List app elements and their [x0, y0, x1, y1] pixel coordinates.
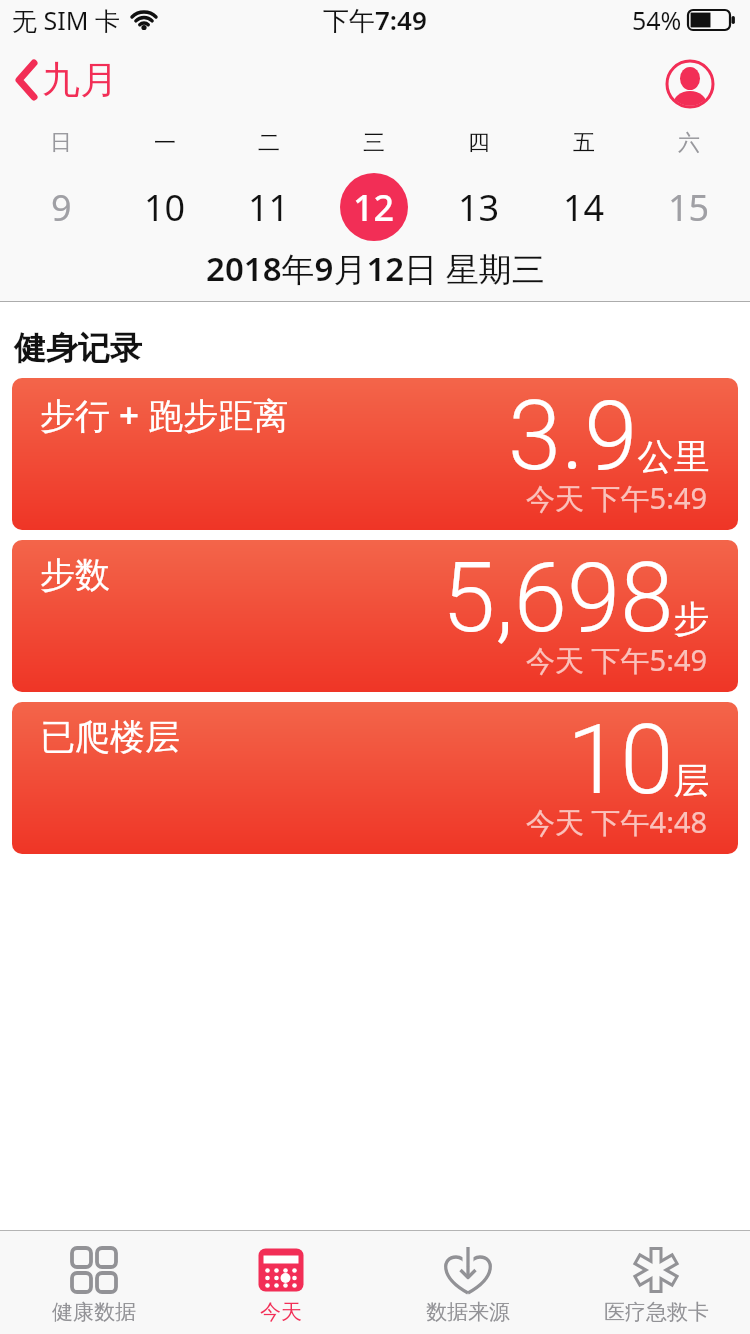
staticText: 四 — [468, 129, 490, 157]
button[interactable]: 九月 — [14, 56, 118, 104]
staticText: 五 — [573, 129, 595, 157]
button[interactable]: 12 — [340, 173, 408, 241]
staticText: 已爬楼层 — [40, 715, 180, 759]
staticText: 10层 — [567, 704, 710, 817]
button[interactable]: 10 — [131, 173, 199, 241]
staticText: 六 — [678, 129, 700, 157]
staticText: 无 SIM 卡 — [12, 3, 120, 37]
staticText: 2018年9月12日 星期三 — [206, 246, 545, 288]
button[interactable]: 数据来源 — [374, 1231, 562, 1334]
button[interactable]: 11 — [235, 173, 303, 241]
staticText: 3.9公里 — [508, 380, 710, 493]
staticText: 14 — [563, 183, 605, 232]
button[interactable]: 健康数据 — [0, 1231, 187, 1334]
staticText: 13 — [458, 183, 500, 232]
staticText: 步数 — [40, 553, 110, 597]
staticText: 下午7:49 — [323, 2, 427, 38]
staticText: 今天 下午4:48 — [526, 802, 708, 842]
staticText: 三 — [363, 129, 385, 157]
staticText: 11 — [248, 183, 290, 232]
button[interactable]: 13 — [445, 173, 513, 241]
button[interactable]: 今天 — [187, 1231, 374, 1334]
staticText: 健康数据 — [52, 1299, 136, 1325]
button[interactable]: 14 — [550, 173, 618, 241]
staticText: 二 — [258, 129, 280, 157]
button[interactable]: 医疗急救卡 — [562, 1231, 750, 1334]
staticText: 15 — [668, 183, 710, 232]
staticText: 12 — [353, 183, 395, 232]
staticText: 数据来源 — [426, 1299, 510, 1325]
staticText: 10 — [144, 183, 186, 232]
button[interactable]: 步行 + 跑步距离 — [12, 378, 738, 530]
staticText: 健身记录 — [14, 328, 142, 368]
staticText: 今天 下午5:49 — [526, 478, 708, 518]
staticText: 今天 下午5:49 — [526, 640, 708, 680]
button[interactable] — [665, 59, 715, 109]
staticText: 一 — [154, 129, 176, 157]
button[interactable]: 9 — [27, 173, 95, 241]
staticText: 5,698步 — [442, 542, 710, 655]
staticText: 医疗急救卡 — [604, 1299, 709, 1325]
button[interactable]: 已爬楼层 — [12, 702, 738, 854]
button[interactable]: 步数 — [12, 540, 738, 692]
staticText: 日 — [50, 129, 72, 157]
staticText: 54% — [632, 3, 682, 37]
button[interactable]: 15 — [655, 173, 723, 241]
staticText: 步行 + 跑步距离 — [40, 391, 289, 439]
staticText: 9 — [51, 183, 72, 232]
staticText: 九月 — [42, 56, 118, 104]
staticText: 今天 — [260, 1299, 302, 1325]
